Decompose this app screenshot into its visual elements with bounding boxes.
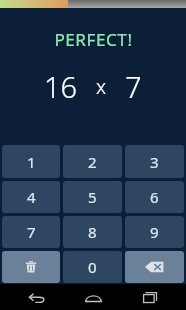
- button[interactable]: 8: [63, 216, 122, 248]
- staticText: 9: [150, 222, 159, 242]
- staticText: 7: [27, 222, 36, 242]
- staticText: x: [96, 73, 107, 100]
- button[interactable]: 9: [125, 216, 184, 248]
- button[interactable]: 2: [63, 145, 122, 178]
- staticText: PERFECT!: [54, 28, 133, 51]
- button[interactable]: 3: [125, 145, 184, 178]
- staticText: 7: [125, 67, 142, 106]
- button[interactable]: 6: [125, 181, 184, 213]
- staticText: 4: [27, 187, 36, 207]
- staticText: 16: [44, 67, 78, 106]
- button[interactable]: Recents: [130, 284, 170, 310]
- button[interactable]: 4: [2, 181, 60, 213]
- staticText: 3: [150, 152, 159, 172]
- button[interactable]: Back: [17, 284, 57, 310]
- button[interactable]: 5: [63, 181, 122, 213]
- button[interactable]: 1: [2, 145, 60, 178]
- button[interactable]: Home: [73, 284, 113, 310]
- staticText: 0: [88, 257, 97, 277]
- button[interactable]: Backspace: [125, 251, 184, 283]
- staticText: 8: [88, 222, 97, 242]
- staticText: 2: [88, 152, 97, 172]
- staticText: 1: [27, 152, 36, 172]
- button[interactable]: 0: [63, 251, 122, 283]
- button[interactable]: 7: [2, 216, 60, 248]
- staticText: 6: [150, 187, 159, 207]
- staticText: 5: [88, 187, 97, 207]
- button[interactable]: Clear: [2, 251, 60, 283]
